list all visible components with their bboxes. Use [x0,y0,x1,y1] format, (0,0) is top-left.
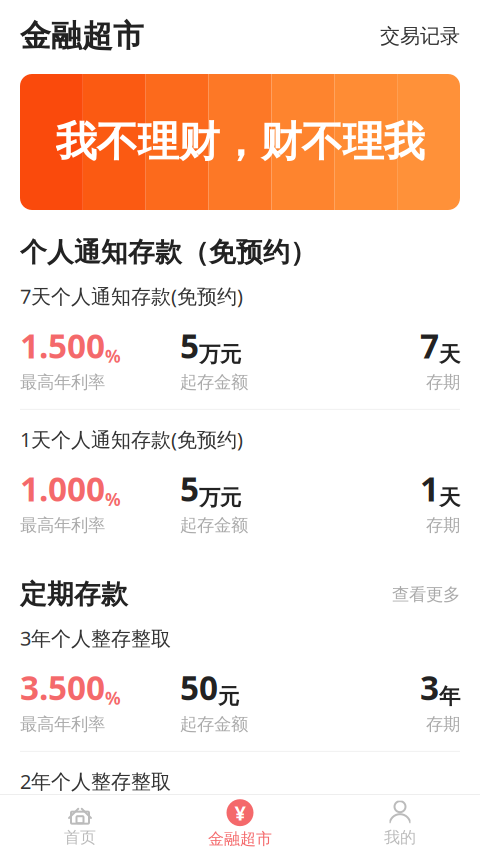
staticText: 存期 [426,515,460,536]
button[interactable]: 7天个人通知存款(免预约) [0,283,480,409]
staticText: 1.000 [20,466,105,511]
button[interactable]: 2年个人整存整取 [0,751,480,854]
staticText: 元 [218,683,239,710]
button[interactable]: ¥ [160,791,320,854]
staticText: 交易记录 [380,24,460,48]
button[interactable]: 3年个人整存整取 [0,625,480,751]
staticText: 最高年利率 [20,372,105,393]
staticText: % [105,345,121,368]
staticText: 3 [420,665,439,710]
button[interactable]: 我的 [320,793,480,854]
staticText: 天 [439,484,460,511]
staticText: 金融超市 [20,17,144,55]
staticText: 最高年利率 [20,515,105,536]
staticText: ¥ [234,799,245,826]
staticText: 起存金额 [180,515,248,536]
staticText: 存期 [426,372,460,393]
staticText: 5 [180,323,199,368]
staticText: 个人通知存款（免预约） [20,236,317,269]
staticText: 7 [420,323,439,368]
staticText: 存期 [426,714,460,735]
staticText: 3.500 [20,665,105,710]
staticText: 1天个人通知存款(免预约) [20,426,243,452]
staticText: 万元 [199,484,241,511]
staticText: 万元 [199,341,241,368]
staticText: 50 [180,665,218,710]
staticText: 我的 [384,828,416,847]
button[interactable]: 查看更多 [382,580,460,609]
staticText: 3年个人整存整取 [20,625,171,651]
staticText: 查看更多 [392,584,460,605]
button[interactable]: 交易记录 [368,18,460,54]
staticText: 7天个人通知存款(免预约) [20,283,243,309]
staticText: 最高年利率 [20,714,105,735]
button[interactable]: 我不理财，财不理我 [0,74,480,210]
staticText: 我不理财，财不理我 [55,117,424,167]
staticText: 年 [439,683,460,710]
staticText: % [105,686,121,709]
staticText: 50 [180,808,218,853]
staticText: % [105,488,121,511]
staticText: 5 [180,466,199,511]
staticText: 天 [439,341,460,368]
staticText: 首页 [64,828,96,847]
staticText: 元 [218,826,239,853]
staticText: 金融超市 [208,829,272,849]
button[interactable]: 首页 [0,793,160,854]
staticText: 1.500 [20,323,105,368]
staticText: 起存金额 [180,714,248,735]
staticText: 定期存款 [20,578,128,611]
staticText: 2.850 [20,808,105,853]
button[interactable]: 1天个人通知存款(免预约) [0,409,480,552]
staticText: 起存金额 [180,372,248,393]
staticText: 2年个人整存整取 [20,768,171,794]
staticText: 1 [420,466,439,511]
